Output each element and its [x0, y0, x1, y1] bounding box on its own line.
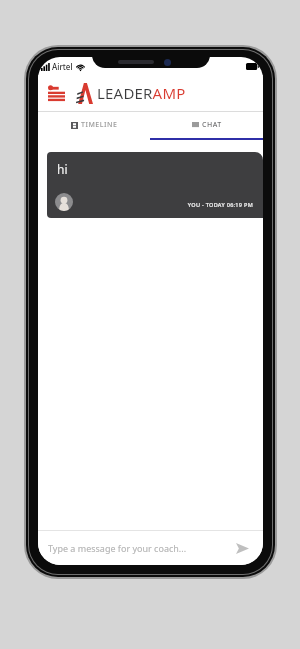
staticText: LEADERAMP — [97, 83, 186, 103]
staticText: Type a message for your coach... — [48, 542, 187, 554]
staticText: Airtel — [52, 61, 73, 72]
button[interactable]: Type a message for your coach... — [48, 531, 231, 565]
staticText: TIMELINE — [81, 120, 118, 130]
button[interactable]: Send — [231, 537, 253, 559]
button[interactable]: hi — [47, 152, 263, 218]
button[interactable]: CHAT — [150, 112, 263, 138]
staticText: CHAT — [202, 120, 222, 130]
button[interactable]: TIMELINE — [38, 112, 150, 138]
staticText: hi — [57, 161, 68, 177]
staticText: YOU - TODAY 06:19 PM — [187, 201, 253, 208]
button[interactable]: Menu — [44, 81, 68, 105]
